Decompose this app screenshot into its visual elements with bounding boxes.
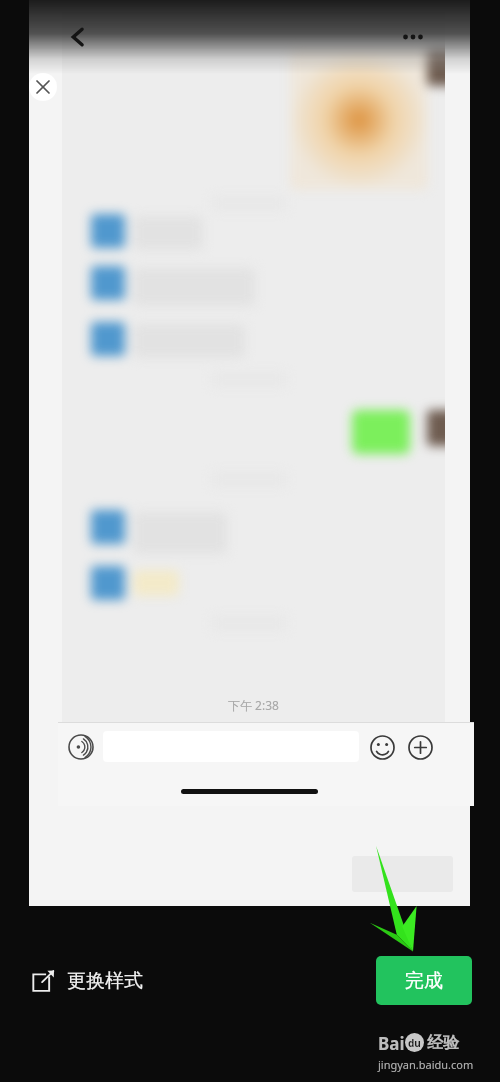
staticText: 经验: [427, 1033, 459, 1053]
button[interactable]: Back: [61, 20, 95, 54]
button[interactable]: Voice input: [64, 730, 98, 764]
button[interactable]: Emoji: [365, 730, 399, 764]
staticText: 更换样式: [67, 969, 143, 993]
button[interactable]: 更换样式: [22, 958, 162, 1004]
staticText: 下午 2:38: [228, 697, 279, 713]
staticText: jingyan.baidu.com: [378, 1057, 474, 1072]
button[interactable]: More options: [396, 20, 430, 54]
button[interactable]: More functions: [403, 730, 437, 764]
staticText: Bai: [378, 1032, 405, 1055]
staticText: du: [408, 1036, 421, 1050]
staticText: 完成: [405, 969, 443, 993]
button[interactable]: Close: [29, 73, 57, 101]
button[interactable]: 完成: [376, 956, 472, 1005]
